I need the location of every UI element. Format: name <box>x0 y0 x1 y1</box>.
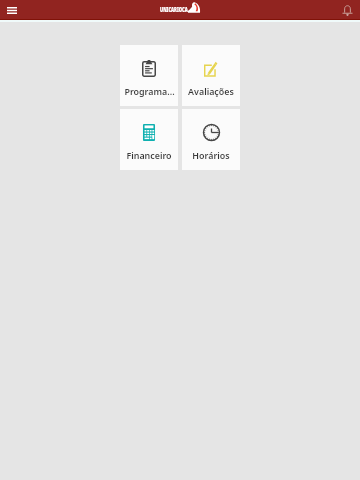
staticText: Programa... <box>124 85 175 97</box>
staticText: Avaliações <box>188 85 234 97</box>
button[interactable]: Horários <box>182 109 240 170</box>
staticText: Financeiro <box>126 149 172 161</box>
button[interactable]: Financeiro <box>120 109 178 170</box>
button[interactable]: Notifications <box>338 0 360 19</box>
staticText: UNICARIOCA <box>160 4 188 14</box>
button[interactable]: Avaliações <box>182 45 240 106</box>
button[interactable]: Menu <box>4 2 20 18</box>
button[interactable]: Programa... <box>120 45 178 106</box>
staticText: Horários <box>192 149 230 161</box>
